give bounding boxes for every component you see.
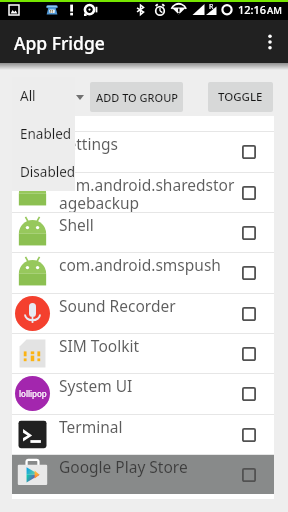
staticText: ADD TO GROUP [96, 90, 178, 105]
button[interactable]: Sound Recorder [12, 294, 274, 333]
staticText: Sound Recorder [59, 295, 176, 316]
staticText: SIM Toolkit [59, 335, 140, 356]
staticText: System UI [59, 375, 133, 396]
button[interactable]: Disabled [12, 153, 75, 191]
button[interactable]: Shell [12, 213, 274, 252]
staticText: AM [267, 4, 282, 17]
button[interactable]: Settings [12, 132, 274, 171]
staticText: Settings [59, 133, 118, 154]
button[interactable]: Terminal [12, 415, 274, 454]
staticText: com.android.smspush [59, 254, 221, 275]
button[interactable]: com.android.sharedstoragebackup [12, 173, 274, 212]
staticText: Shell [59, 214, 94, 235]
button[interactable]: TOGGLE [208, 82, 273, 112]
button[interactable]: com.android.smspush [12, 253, 274, 292]
button[interactable]: SIM Toolkit [12, 334, 274, 373]
button[interactable]: ADD TO GROUP [90, 82, 183, 112]
staticText: Disabled [20, 163, 75, 181]
staticText: R [209, 2, 214, 12]
staticText: com.android.sharedstoragebackup [59, 174, 242, 213]
staticText: Google Play Store [59, 456, 188, 477]
staticText: lollipop [19, 388, 47, 399]
staticText: Enabled [20, 125, 72, 143]
staticText: All [20, 87, 36, 105]
button[interactable]: lollipop [12, 374, 274, 413]
button[interactable]: Google Play Store [12, 455, 274, 494]
button[interactable]: Enabled [12, 115, 75, 153]
staticText: App Fridge [14, 31, 105, 55]
button[interactable]: All [12, 77, 75, 115]
staticText: Terminal [59, 416, 123, 437]
button[interactable]: More options [252, 20, 288, 63]
staticText: 12:16 [238, 2, 267, 17]
staticText: TOGGLE [218, 89, 263, 105]
